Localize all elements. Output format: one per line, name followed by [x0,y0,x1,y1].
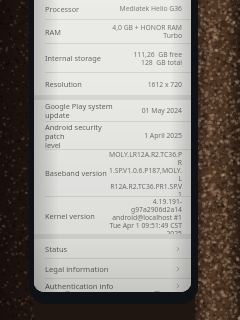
staticText: 1612 x 720 [147,80,182,89]
button[interactable]: Internal storage [34,44,191,72]
staticText: Baseband version [45,168,107,178]
button[interactable]: RAM [34,20,191,43]
staticText: 4.19.191-g97a2906d2a14 android@localhost… [107,197,182,234]
staticText: Processor [45,4,107,14]
staticText: Legal information [45,264,175,274]
button[interactable]: Google Play system update [34,100,191,121]
staticText: RAM [45,27,107,37]
button[interactable]: Status [34,239,191,258]
staticText: Mediatek Helio G36 [119,4,182,13]
staticText: 1 April 2025 [144,131,182,140]
button[interactable]: Legal information [34,259,191,278]
staticText: Internal storage [45,53,107,63]
button[interactable]: Android security patch level [34,122,191,149]
staticText: Status [45,244,175,254]
staticText: 111,26 GB free 128 GB total [133,50,182,67]
staticText: 01 May 2024 [141,106,182,115]
staticText: Kernel version [45,211,107,221]
button[interactable]: Baseband version [34,150,191,196]
staticText: Resolution [45,79,107,89]
button[interactable]: Resolution [34,73,191,95]
button[interactable]: Authentication info [34,279,191,292]
button[interactable]: Kernel version [34,197,191,234]
staticText: Google Play system update [45,101,125,120]
staticText: 4,0 GB + HONOR RAM Turbo [107,23,182,40]
staticText: Authentication info [45,281,175,291]
button[interactable]: Processor [34,0,191,19]
staticText: Android security patch level [45,122,107,149]
staticText: MOLY.LR12A.R2.TC36.PR 1.SP.V1.0.6.P187,M… [107,150,182,196]
